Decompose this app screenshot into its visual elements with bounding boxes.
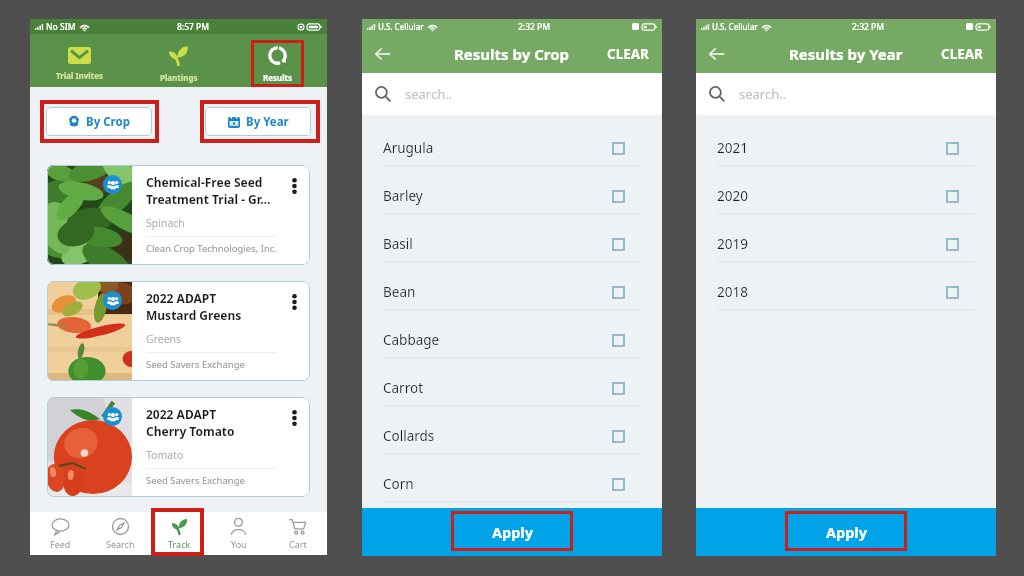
staticText: Cherry Tomato xyxy=(146,423,235,439)
staticText: Corn xyxy=(383,475,414,493)
staticText: You xyxy=(231,538,247,550)
button[interactable]: Bean xyxy=(362,262,662,310)
staticText: 2018 xyxy=(717,283,748,301)
staticText: Barley xyxy=(383,187,423,205)
staticText: Tomato xyxy=(146,448,184,462)
staticText: Collards xyxy=(383,427,435,445)
staticText: Results by Crop xyxy=(454,44,570,64)
staticText: 8:57 PM xyxy=(177,21,210,33)
staticText: Treatment Trial - Gr… xyxy=(146,191,271,207)
button[interactable]: More options xyxy=(282,397,310,497)
staticText: Apply xyxy=(826,522,867,542)
staticText: Carrot xyxy=(383,379,424,397)
staticText: 2019 xyxy=(717,235,748,253)
staticText: CLEAR xyxy=(607,45,649,63)
button[interactable]: Back xyxy=(696,34,738,73)
staticText: No SIM xyxy=(46,21,76,33)
staticText: Arugula xyxy=(383,139,434,157)
staticText: Feed xyxy=(50,538,71,550)
staticText: Greens xyxy=(146,332,182,346)
staticText: Bean xyxy=(383,283,416,301)
staticText: Track xyxy=(168,538,191,550)
button[interactable]: Cart xyxy=(268,512,327,555)
staticText: U.S. Cellular xyxy=(712,21,758,32)
staticText: By Crop xyxy=(86,114,130,130)
button[interactable]: Chemical-Free Seed xyxy=(47,165,310,265)
staticText: Mustard Greens xyxy=(146,307,242,323)
button[interactable]: By Crop xyxy=(46,107,152,136)
button[interactable]: Corn xyxy=(362,454,662,502)
button[interactable]: search.. xyxy=(696,73,996,115)
button[interactable]: Cabbage xyxy=(362,310,662,358)
staticText: Plantings xyxy=(160,72,198,83)
staticText: 2:32 PM xyxy=(852,21,885,33)
button[interactable]: Trial Invites xyxy=(30,34,129,87)
staticText: 2022 ADAPT xyxy=(146,406,217,422)
button[interactable]: 2022 ADAPT xyxy=(47,397,310,497)
button[interactable]: Apply xyxy=(451,512,573,552)
staticText: 2022 ADAPT xyxy=(146,290,217,306)
staticText: Trial Invites xyxy=(56,70,103,81)
staticText: 2020 xyxy=(717,187,748,205)
staticText: Results xyxy=(263,72,293,83)
button[interactable]: Apply xyxy=(785,512,907,552)
staticText: CLEAR xyxy=(941,45,983,63)
staticText: Cart xyxy=(289,538,307,550)
button[interactable]: Plantings xyxy=(129,34,228,87)
staticText: Search xyxy=(106,538,135,550)
staticText: Clean Crop Technologies, Inc. xyxy=(146,242,277,255)
button[interactable]: Basil xyxy=(362,214,662,262)
button[interactable]: 2021 xyxy=(696,118,996,166)
button[interactable]: Back xyxy=(362,34,404,73)
button[interactable]: Carrot xyxy=(362,358,662,406)
button[interactable]: CLEAR xyxy=(928,34,996,73)
button[interactable]: Barley xyxy=(362,166,662,214)
staticText: Chemical-Free Seed xyxy=(146,174,263,190)
staticText: Cabbage xyxy=(383,331,440,349)
staticText: Spinach xyxy=(146,216,185,230)
staticText: Apply xyxy=(492,522,533,542)
button[interactable]: search.. xyxy=(362,73,662,115)
button[interactable]: Track xyxy=(150,512,209,555)
button[interactable]: 2019 xyxy=(696,214,996,262)
button[interactable]: Results xyxy=(228,34,327,87)
button[interactable]: CLEAR xyxy=(594,34,662,73)
button[interactable]: More options xyxy=(282,281,310,381)
staticText: U.S. Cellular xyxy=(378,21,424,32)
button[interactable]: Search xyxy=(90,512,150,555)
staticText: 2021 xyxy=(717,139,748,157)
button[interactable]: By Year xyxy=(205,107,311,136)
button[interactable]: 2020 xyxy=(696,166,996,214)
button[interactable]: Arugula xyxy=(362,118,662,166)
button[interactable]: 2018 xyxy=(696,262,996,310)
staticText: search.. xyxy=(739,85,787,103)
staticText: search.. xyxy=(405,85,453,103)
button[interactable]: Collards xyxy=(362,406,662,454)
staticText: 2:32 PM xyxy=(518,21,551,33)
staticText: Seed Savers Exchange xyxy=(146,474,245,487)
button[interactable]: You xyxy=(209,512,268,555)
staticText: Basil xyxy=(383,235,413,253)
button[interactable]: 2022 ADAPT xyxy=(47,281,310,381)
button[interactable]: Feed xyxy=(30,512,90,555)
staticText: Seed Savers Exchange xyxy=(146,358,245,371)
button[interactable]: More options xyxy=(282,165,310,265)
staticText: Results by Year xyxy=(789,44,903,64)
staticText: By Year xyxy=(246,114,289,130)
